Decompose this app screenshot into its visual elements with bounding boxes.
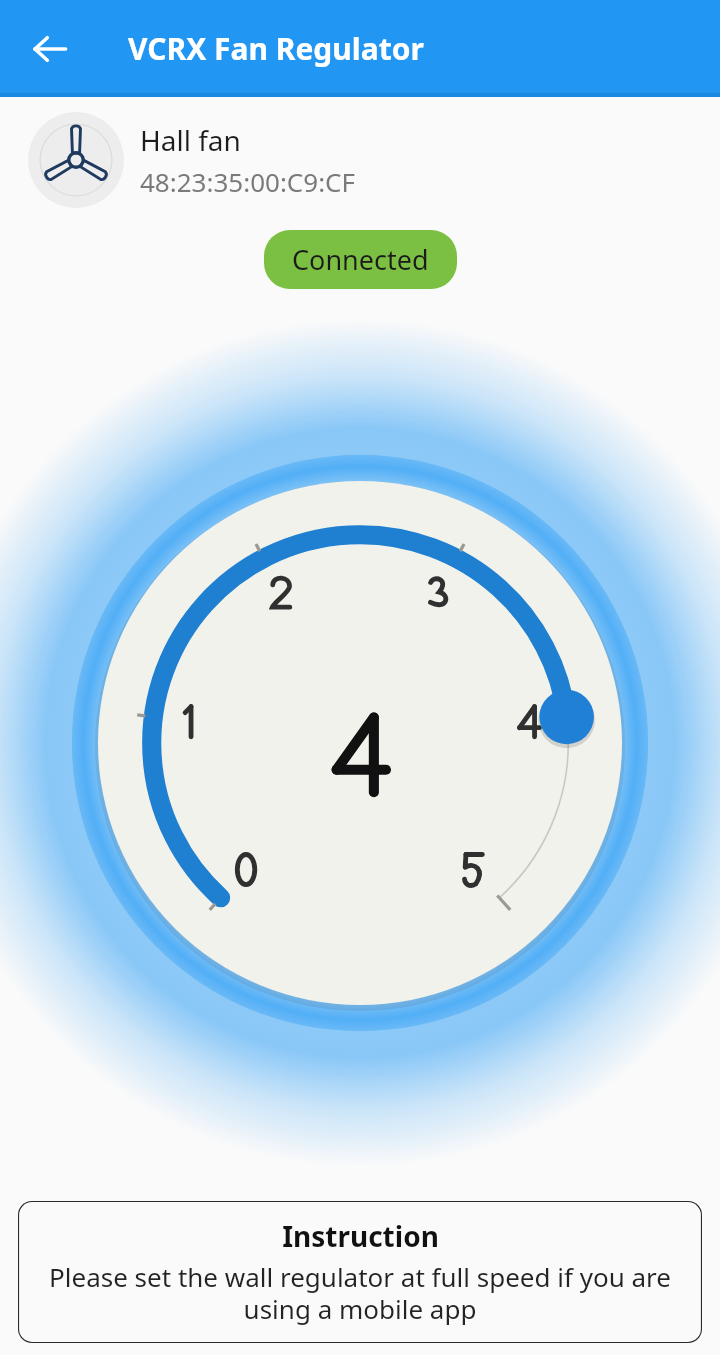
button[interactable]: Connected bbox=[264, 230, 457, 289]
button[interactable]: Hall fan bbox=[28, 112, 720, 208]
staticText: Please set the wall regulator at full sp… bbox=[30, 1259, 690, 1327]
button[interactable]: Fan speed 4 bbox=[0, 433, 720, 1053]
button[interactable]: Instruction bbox=[18, 1201, 702, 1343]
button[interactable]: Back bbox=[20, 19, 80, 79]
staticText: Hall fan bbox=[140, 121, 241, 159]
staticText: Instruction bbox=[282, 1217, 439, 1255]
staticText: VCRX Fan Regulator bbox=[128, 28, 424, 69]
staticText: 48:23:35:00:C9:CF bbox=[140, 164, 356, 199]
staticText: Connected bbox=[292, 241, 429, 278]
